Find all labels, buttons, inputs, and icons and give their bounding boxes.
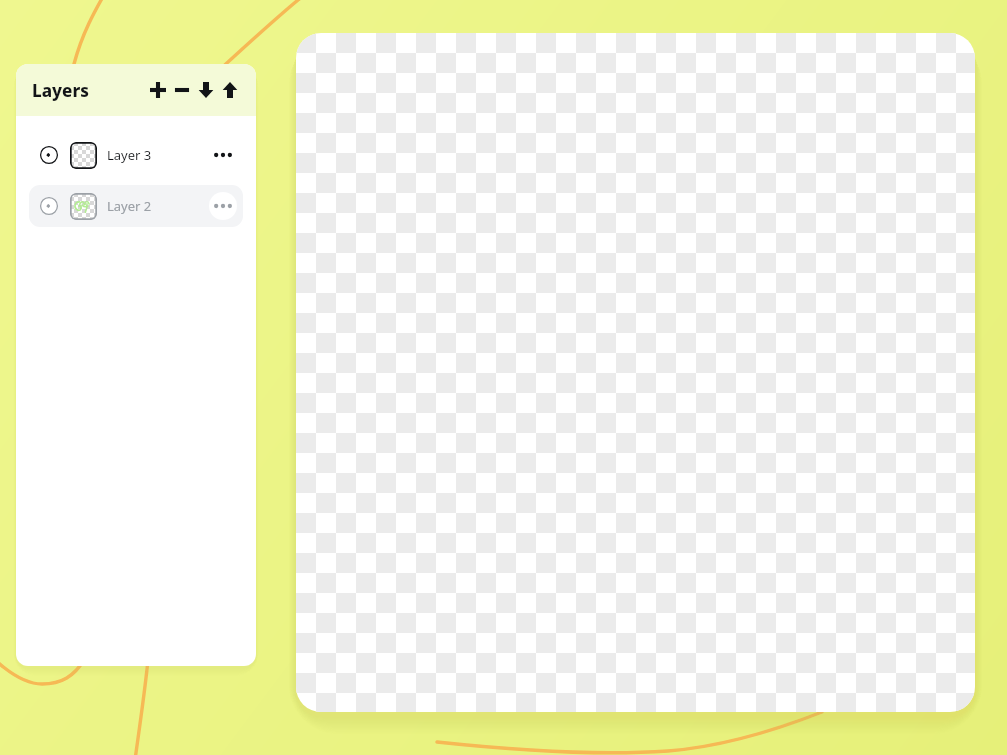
- button[interactable]: Move layer down: [194, 72, 218, 108]
- staticText: Layers: [32, 79, 89, 102]
- button[interactable]: Toggle visibility of Layer 2: [29, 185, 243, 227]
- staticText: Layer 2: [107, 197, 152, 215]
- button[interactable]: Move layer up: [218, 72, 242, 108]
- button[interactable]: More options for Layer 3: [209, 141, 237, 169]
- staticText: Layer 3: [107, 146, 152, 164]
- button[interactable]: More options for Layer 2: [209, 192, 237, 220]
- button[interactable]: Toggle visibility of Layer 3: [29, 134, 243, 176]
- button[interactable]: Toggle visibility of Layer 3: [36, 142, 62, 168]
- button[interactable]: Add layer: [146, 72, 170, 108]
- button[interactable]: Delete layer: [170, 72, 194, 108]
- button[interactable]: Toggle visibility of Layer 2: [36, 193, 62, 219]
